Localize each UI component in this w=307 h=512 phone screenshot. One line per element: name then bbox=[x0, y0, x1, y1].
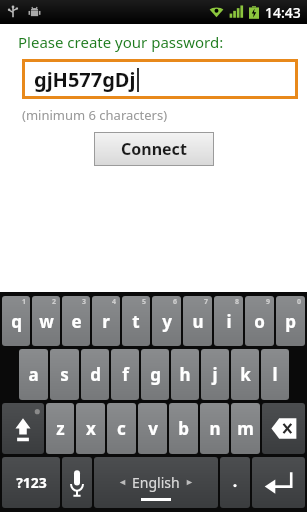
staticText: 7 bbox=[204, 297, 209, 307]
staticText: 5 bbox=[142, 297, 147, 307]
button[interactable]: t bbox=[122, 296, 150, 346]
button[interactable]: c bbox=[107, 403, 136, 454]
staticText: c bbox=[117, 417, 126, 440]
staticText: English bbox=[132, 473, 180, 492]
staticText: a bbox=[28, 363, 39, 386]
button[interactable]: e bbox=[62, 296, 90, 346]
staticText: m bbox=[237, 417, 254, 440]
staticText: n bbox=[209, 417, 221, 440]
staticText: b bbox=[178, 417, 189, 440]
button[interactable]: Shift bbox=[2, 403, 44, 454]
button[interactable]: Enter bbox=[252, 457, 305, 508]
button[interactable]: k bbox=[231, 349, 259, 400]
button[interactable]: x bbox=[76, 403, 105, 454]
staticText: p bbox=[285, 310, 296, 333]
staticText: l bbox=[272, 363, 278, 386]
button[interactable]: p bbox=[276, 296, 305, 346]
staticText: h bbox=[179, 363, 191, 386]
staticText: gjH577gDj bbox=[34, 66, 136, 93]
staticText: 4 bbox=[112, 297, 117, 307]
staticText: g bbox=[150, 363, 161, 386]
button[interactable]: r bbox=[92, 296, 120, 346]
staticText: q bbox=[11, 310, 22, 333]
button[interactable]: f bbox=[111, 349, 139, 400]
staticText: 8 bbox=[235, 297, 240, 307]
staticText: 2 bbox=[52, 297, 57, 307]
button[interactable]: g bbox=[141, 349, 169, 400]
button[interactable]: v bbox=[138, 403, 167, 454]
button[interactable]: l bbox=[261, 349, 289, 400]
button[interactable]: o bbox=[245, 296, 274, 346]
button[interactable]: d bbox=[81, 349, 109, 400]
button[interactable]: Voice input bbox=[62, 457, 92, 508]
button[interactable]: n bbox=[200, 403, 229, 454]
button[interactable]: Connect bbox=[95, 133, 213, 165]
other: Android debugging bbox=[28, 6, 41, 19]
staticText: x bbox=[86, 417, 96, 440]
button[interactable]: z bbox=[46, 403, 74, 454]
staticText: o bbox=[254, 310, 265, 333]
button[interactable]: y bbox=[152, 296, 181, 346]
staticText: j bbox=[212, 363, 218, 386]
button[interactable]: m bbox=[231, 403, 260, 454]
staticText: s bbox=[60, 363, 69, 386]
staticText: f bbox=[122, 363, 129, 386]
staticText: 1 bbox=[22, 297, 27, 307]
staticText: 0 bbox=[297, 297, 302, 307]
staticText: r bbox=[102, 310, 110, 333]
staticText: i bbox=[226, 310, 232, 333]
staticText: e bbox=[71, 310, 82, 333]
other: USB connected bbox=[6, 5, 20, 19]
button[interactable]: i bbox=[214, 296, 243, 346]
button[interactable]: j bbox=[201, 349, 229, 400]
staticText: v bbox=[148, 417, 158, 440]
staticText: d bbox=[90, 363, 101, 386]
staticText: 9 bbox=[266, 297, 271, 307]
button[interactable]: q bbox=[2, 296, 30, 346]
button[interactable]: gjH577gDj bbox=[25, 62, 295, 96]
staticText: ?123 bbox=[16, 473, 47, 492]
staticText: u bbox=[192, 310, 204, 333]
staticText: 14:43 bbox=[265, 3, 301, 22]
staticText: t bbox=[132, 310, 140, 333]
button[interactable]: b bbox=[169, 403, 198, 454]
button[interactable]: Space, English bbox=[94, 457, 218, 508]
button[interactable]: Period bbox=[220, 457, 250, 508]
staticText: (minimum 6 characters) bbox=[22, 106, 168, 124]
staticText: Please create your password: bbox=[18, 32, 224, 52]
button[interactable]: w bbox=[32, 296, 60, 346]
staticText: z bbox=[56, 417, 65, 440]
staticText: k bbox=[240, 363, 251, 386]
button[interactable]: Delete bbox=[262, 403, 305, 454]
button[interactable]: s bbox=[50, 349, 79, 400]
staticText: 6 bbox=[173, 297, 178, 307]
staticText: 3 bbox=[82, 297, 87, 307]
button[interactable]: h bbox=[171, 349, 199, 400]
staticText: w bbox=[39, 310, 54, 333]
button[interactable]: u bbox=[183, 296, 212, 346]
button[interactable]: ?123 bbox=[2, 457, 60, 508]
button[interactable]: a bbox=[19, 349, 48, 400]
staticText: Connect bbox=[121, 138, 187, 160]
staticText: y bbox=[162, 310, 172, 333]
